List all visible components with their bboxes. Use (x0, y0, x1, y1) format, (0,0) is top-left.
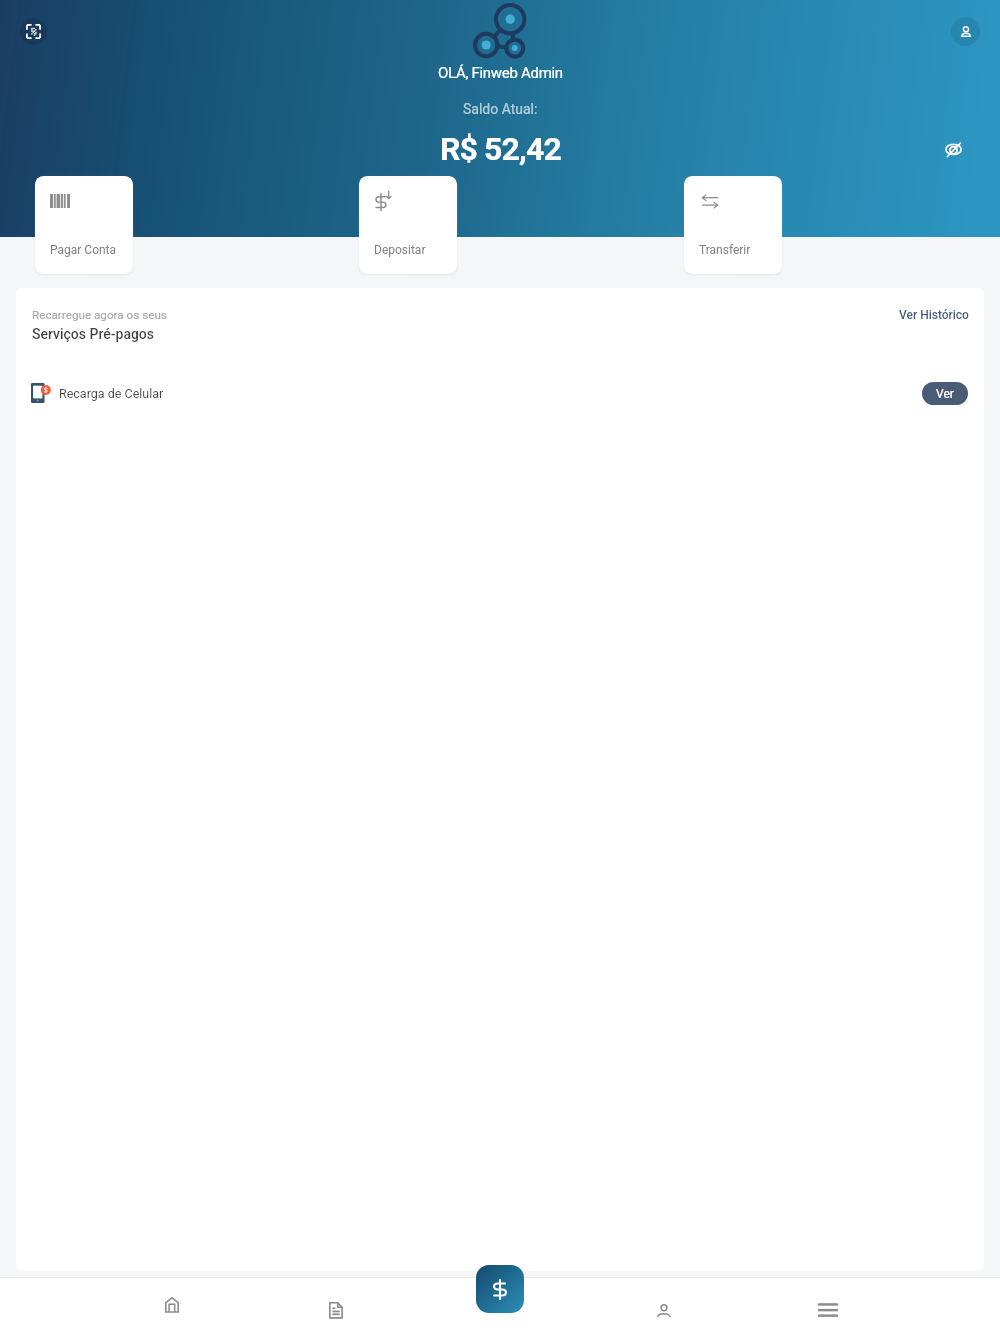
button[interactable]: Ver Histórico (899, 308, 969, 322)
staticText: OLÁ, Finweb Admin (438, 64, 563, 82)
button[interactable]: Escanear QR code (20, 18, 47, 45)
button[interactable]: Pagamentos (476, 1265, 524, 1313)
staticText: Depositar (374, 243, 426, 257)
button[interactable]: Perfil do usuário (951, 17, 980, 46)
button[interactable]: Pagar Conta (35, 176, 133, 274)
button[interactable]: Transferir (684, 176, 782, 274)
staticText: Ver (936, 387, 954, 401)
button[interactable]: Menu (746, 1277, 910, 1334)
staticText: Serviços Pré-pagos (32, 326, 155, 342)
button[interactable]: Extrato (254, 1277, 418, 1334)
staticText: Ver Histórico (899, 308, 969, 322)
staticText: Saldo Atual: (463, 101, 538, 117)
button[interactable]: Recarga de Celular (16, 370, 984, 416)
staticText: Pagar Conta (50, 243, 117, 257)
button[interactable]: Ver (922, 382, 968, 405)
staticText: Recarga de Celular (59, 386, 164, 401)
staticText: Transferir (699, 243, 751, 257)
button[interactable]: Início (90, 1277, 254, 1334)
button[interactable]: Depositar (359, 176, 457, 274)
button[interactable]: Ocultar saldo (936, 133, 970, 167)
button[interactable]: Conta (582, 1277, 746, 1334)
staticText: Recarregue agora os seus (32, 308, 167, 322)
staticText: R$ 52,42 (440, 130, 561, 168)
